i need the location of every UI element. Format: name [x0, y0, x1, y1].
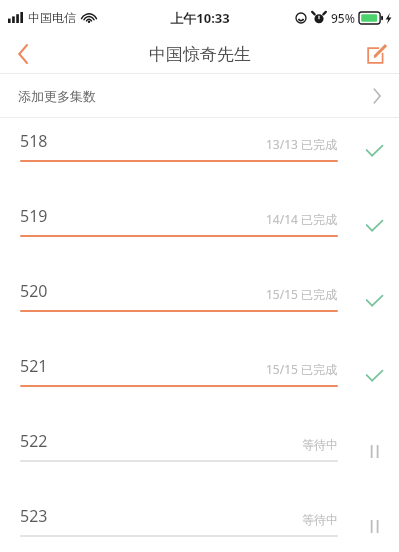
button[interactable]: 520 [0, 268, 399, 343]
staticText: 等待中 [302, 437, 338, 452]
staticText: 523 [20, 505, 48, 527]
button[interactable]: 518 [0, 118, 399, 193]
staticText: 中国惊奇先生 [149, 44, 251, 65]
button[interactable]: 添加更多集数 [0, 74, 399, 117]
staticText: 518 [20, 130, 48, 152]
button[interactable]: Completed [359, 211, 389, 241]
staticText: 14/14 已完成 [266, 211, 338, 227]
staticText: 521 [20, 355, 48, 377]
button[interactable]: Completed [359, 136, 389, 166]
staticText: 95% [331, 10, 355, 26]
button[interactable]: Edit [353, 35, 399, 73]
staticText: 添加更多集数 [18, 88, 96, 104]
staticText: 15/15 已完成 [266, 286, 338, 302]
button[interactable]: Pause [359, 436, 389, 466]
staticText: 等待中 [302, 512, 338, 527]
button[interactable]: 521 [0, 343, 399, 418]
staticText: 520 [20, 280, 48, 302]
button[interactable]: Completed [359, 286, 389, 316]
button[interactable]: Completed [359, 361, 389, 391]
button[interactable]: 519 [0, 193, 399, 268]
staticText: 13/13 已完成 [266, 136, 338, 152]
staticText: 522 [20, 430, 48, 452]
staticText: 上午10:33 [170, 9, 230, 27]
staticText: 15/15 已完成 [266, 361, 338, 377]
staticText: 519 [20, 205, 48, 227]
button[interactable]: Back [0, 35, 46, 73]
button[interactable]: Pause [359, 511, 389, 541]
staticText: 中国电信 [28, 10, 76, 25]
button[interactable]: 523 [0, 493, 399, 552]
button[interactable]: 522 [0, 418, 399, 493]
